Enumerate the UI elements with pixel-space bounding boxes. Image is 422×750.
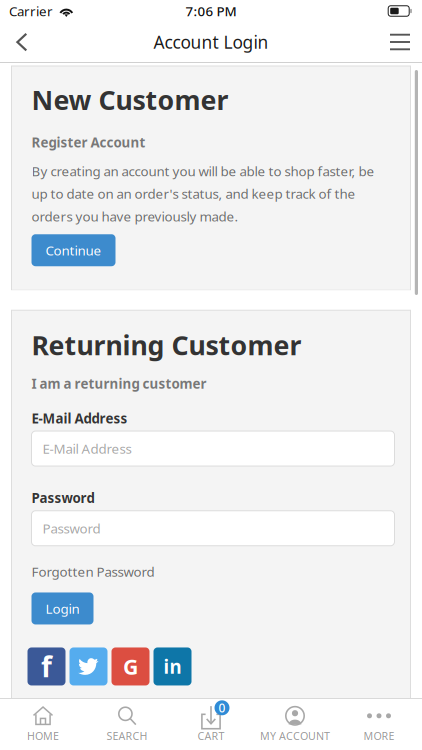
staticText: HOME [27,729,59,743]
staticText: MY ACCOUNT [260,729,330,743]
staticText: MORE [363,729,394,743]
staticText: I am a returning customer [31,375,206,392]
staticText: By creating an account you will be able … [31,162,374,225]
staticText: Login [45,600,79,617]
button[interactable]: 0 [169,700,253,748]
staticText: Carrier [9,2,53,20]
button[interactable]: Back [0,22,44,62]
button[interactable]: Continue [31,234,115,266]
staticText: Register Account [31,133,145,151]
staticText: 0 [218,700,225,716]
button[interactable]: Google [111,647,149,685]
staticText: E-Mail Address [42,440,131,457]
staticText: Account Login [153,30,268,53]
staticText: Forgotten Password [31,563,154,580]
staticText: New Customer [31,82,228,117]
staticText: G [123,652,138,681]
staticText: 7:06 PM [185,2,236,20]
staticText: Password [42,519,100,537]
button[interactable]: MY ACCOUNT [253,700,337,748]
staticText: Password [31,489,94,507]
button[interactable]: Facebook [27,647,65,685]
staticText: f [41,648,52,685]
staticText: SEARCH [106,729,147,743]
button[interactable]: Menu [378,22,422,62]
staticText: in [163,654,181,679]
button[interactable]: MORE [337,700,421,748]
staticText: Continue [45,241,101,259]
staticText: Returning Customer [31,327,301,363]
button[interactable]: Login [31,592,93,624]
button[interactable]: LinkedIn [153,647,191,685]
staticText: CART [197,729,224,743]
button[interactable]: HOME [1,700,85,748]
button[interactable]: Twitter [69,647,107,685]
staticText: E-Mail Address [31,409,127,427]
button[interactable]: SEARCH [85,700,169,748]
button[interactable]: Forgotten Password [11,546,154,580]
